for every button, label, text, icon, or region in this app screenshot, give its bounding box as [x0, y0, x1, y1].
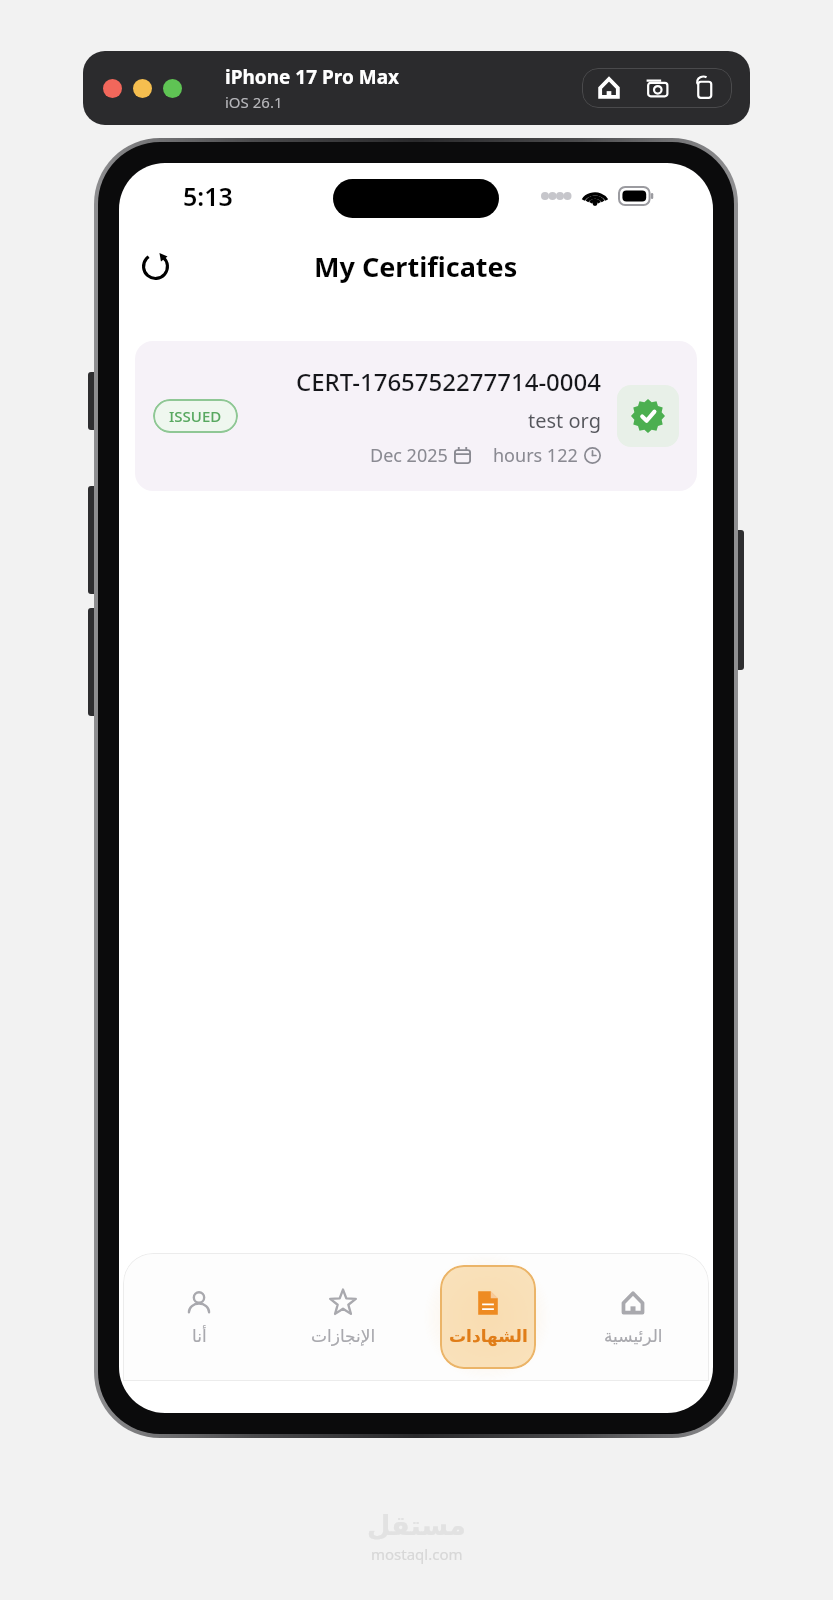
button[interactable]: أنا: [127, 1253, 271, 1381]
staticText: الإنجازات: [311, 1326, 376, 1346]
staticText: الشهادات: [449, 1326, 528, 1346]
button[interactable]: الرئيسية: [560, 1253, 705, 1381]
button[interactable]: ISSUED: [153, 399, 238, 433]
staticText: iPhone 17 Pro Max: [225, 64, 400, 90]
staticText: My Certificates: [314, 248, 518, 285]
button[interactable]: Rotate: [692, 75, 718, 101]
staticText: الرئيسية: [604, 1326, 663, 1346]
button[interactable]: CERT-1765752277714-0004: [135, 341, 697, 491]
staticText: mostaql.com: [371, 1544, 463, 1564]
staticText: hours 122: [493, 443, 578, 468]
button[interactable]: الشهادات: [415, 1253, 560, 1381]
staticText: مستقل: [367, 1510, 466, 1541]
button[interactable]: الإنجازات: [271, 1253, 415, 1381]
button[interactable]: Home: [596, 75, 622, 101]
staticText: test org: [528, 407, 601, 434]
staticText: 5:13: [183, 179, 233, 213]
staticText: CERT-1765752277714-0004: [295, 365, 601, 398]
button[interactable]: Screenshot: [644, 75, 670, 101]
staticText: iOS 26.1: [225, 92, 283, 112]
staticText: أنا: [192, 1326, 207, 1346]
staticText: ISSUED: [169, 406, 222, 426]
staticText: Dec 2025: [370, 443, 448, 468]
button[interactable]: Refresh: [131, 242, 179, 290]
